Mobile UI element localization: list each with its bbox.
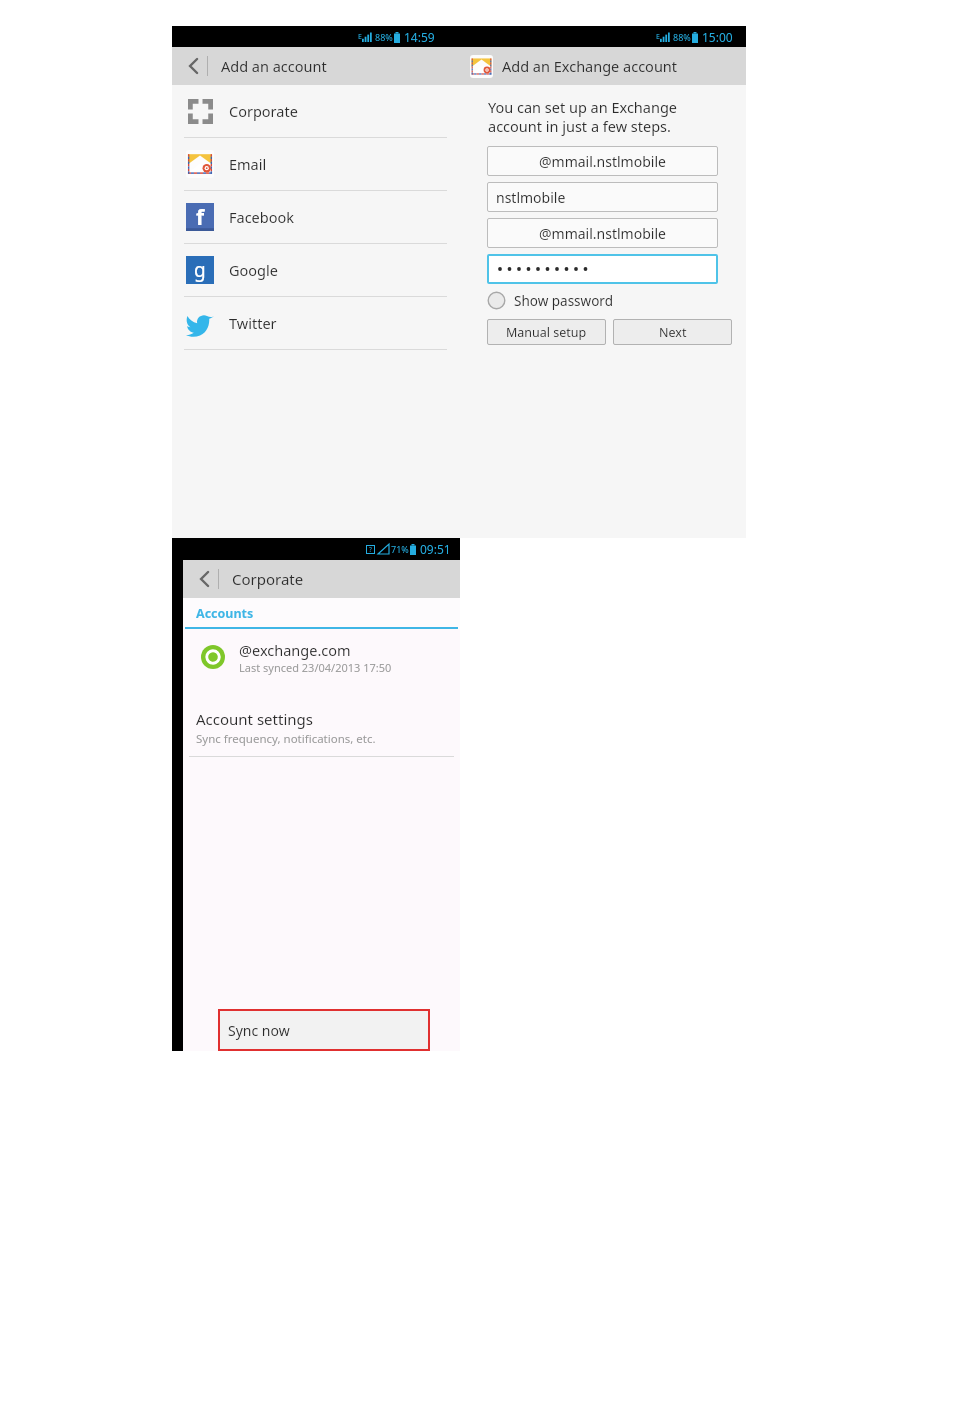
- staticText: Twitter: [229, 313, 277, 333]
- staticText: E: [358, 32, 362, 42]
- staticText: Add an account: [221, 56, 327, 76]
- staticText: Sync now: [228, 1021, 290, 1040]
- staticText: @mmail.nstlmobile: [539, 152, 666, 171]
- button[interactable]: Sync now: [218, 1009, 430, 1051]
- staticText: @exchange.com: [239, 640, 351, 660]
- staticText: Corporate: [229, 101, 298, 121]
- staticText: f: [196, 203, 205, 231]
- staticText: Account settings: [196, 709, 313, 729]
- button[interactable]: @mmail.nstlmobile: [487, 146, 718, 176]
- staticText: Last synced 23/04/2013 17:50: [239, 660, 392, 675]
- button[interactable]: Next: [613, 319, 732, 345]
- staticText: 15:00: [702, 29, 733, 45]
- button[interactable]: Back: [183, 560, 460, 598]
- staticText: You can set up an Exchange account in ju…: [488, 97, 678, 136]
- staticText: Corporate: [232, 569, 304, 589]
- staticText: g: [194, 257, 206, 283]
- button[interactable]: Show password: [487, 291, 613, 310]
- staticText: Show password: [514, 292, 613, 310]
- button[interactable]: [487, 254, 718, 284]
- staticText: Email: [229, 154, 267, 174]
- button[interactable]: @mmail.nstlmobile: [487, 218, 718, 248]
- button[interactable]: Manual setup: [487, 319, 606, 345]
- staticText: E: [656, 32, 660, 42]
- button[interactable]: nstlmobile: [487, 182, 718, 212]
- button[interactable]: Corporate: [172, 85, 459, 138]
- staticText: Google: [229, 260, 278, 280]
- staticText: Next: [659, 324, 687, 341]
- button[interactable]: f: [172, 191, 459, 244]
- staticText: Sync frequency, notifications, etc.: [196, 731, 376, 747]
- button[interactable]: g: [172, 244, 459, 297]
- button[interactable]: Accounts: [183, 598, 460, 629]
- staticText: 09:51: [420, 541, 451, 557]
- button[interactable]: Twitter: [172, 297, 459, 350]
- staticText: nstlmobile: [496, 188, 566, 207]
- staticText: 14:59: [404, 29, 435, 45]
- staticText: Manual setup: [506, 324, 587, 341]
- button[interactable]: Back: [172, 47, 459, 85]
- button[interactable]: Account settings: [183, 709, 460, 757]
- staticText: Add an Exchange account: [502, 56, 678, 76]
- staticText: 88%: [375, 31, 393, 43]
- other: Back: [181, 53, 207, 79]
- button[interactable]: @exchange.com: [183, 629, 460, 685]
- button[interactable]: Email: [172, 138, 459, 191]
- staticText: 71%: [391, 543, 409, 555]
- staticText: Accounts: [196, 605, 254, 622]
- staticText: ?: [369, 545, 372, 554]
- staticText: 88%: [673, 31, 691, 43]
- staticText: @mmail.nstlmobile: [539, 224, 666, 243]
- staticText: Facebook: [229, 207, 295, 227]
- other: Back: [192, 566, 218, 592]
